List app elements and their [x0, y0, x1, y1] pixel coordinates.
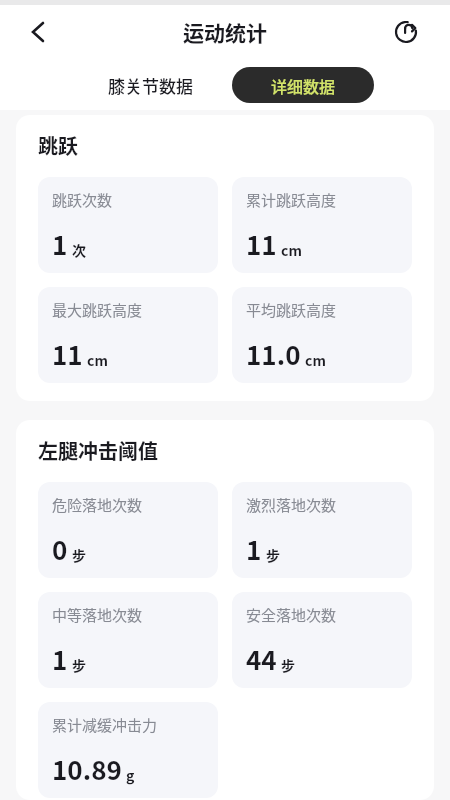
- staticText: 11: [246, 225, 277, 263]
- button[interactable]: 平均跳跃高度: [232, 287, 412, 383]
- button[interactable]: 膝关节数据: [88, 67, 212, 103]
- button[interactable]: 累计跳跃高度: [232, 177, 412, 273]
- staticText: g: [126, 765, 135, 785]
- staticText: 1: [52, 640, 68, 678]
- staticText: cm: [281, 240, 302, 260]
- staticText: 跳跃: [38, 131, 78, 160]
- staticText: 0: [52, 530, 68, 568]
- staticText: 详细数据: [271, 74, 336, 97]
- button[interactable]: 危险落地次数: [38, 482, 218, 578]
- staticText: 10.89: [52, 750, 122, 788]
- button[interactable]: 激烈落地次数: [232, 482, 412, 578]
- button[interactable]: 中等落地次数: [38, 592, 218, 688]
- staticText: 膝关节数据: [108, 73, 193, 98]
- button[interactable]: 安全落地次数: [232, 592, 412, 688]
- staticText: 危险落地次数: [52, 494, 143, 516]
- button[interactable]: 最大跳跃高度: [38, 287, 218, 383]
- staticText: 11.0: [246, 335, 301, 373]
- staticText: 步: [266, 545, 280, 565]
- button[interactable]: 详细数据: [232, 67, 374, 103]
- staticText: 左腿冲击阈值: [38, 436, 158, 465]
- staticText: 1: [52, 225, 68, 263]
- staticText: 累计跳跃高度: [246, 189, 337, 211]
- staticText: 平均跳跃高度: [246, 299, 337, 321]
- staticText: 中等落地次数: [52, 604, 143, 626]
- staticText: 累计减缓冲击力: [52, 714, 158, 736]
- button[interactable]: Back: [18, 12, 58, 52]
- staticText: 步: [72, 545, 86, 565]
- staticText: 次: [72, 240, 86, 260]
- staticText: 最大跳跃高度: [52, 299, 143, 321]
- staticText: 安全落地次数: [246, 604, 337, 626]
- staticText: 步: [281, 655, 295, 675]
- button[interactable]: 累计减缓冲击力: [38, 702, 218, 798]
- staticText: 激烈落地次数: [246, 494, 337, 516]
- staticText: 11: [52, 335, 83, 373]
- button[interactable]: Refresh: [386, 12, 426, 52]
- staticText: 运动统计: [183, 17, 267, 47]
- staticText: 1: [246, 530, 262, 568]
- staticText: cm: [305, 350, 326, 370]
- staticText: 步: [72, 655, 86, 675]
- staticText: cm: [87, 350, 108, 370]
- staticText: 44: [246, 640, 277, 678]
- staticText: 跳跃次数: [52, 189, 113, 211]
- button[interactable]: 跳跃次数: [38, 177, 218, 273]
